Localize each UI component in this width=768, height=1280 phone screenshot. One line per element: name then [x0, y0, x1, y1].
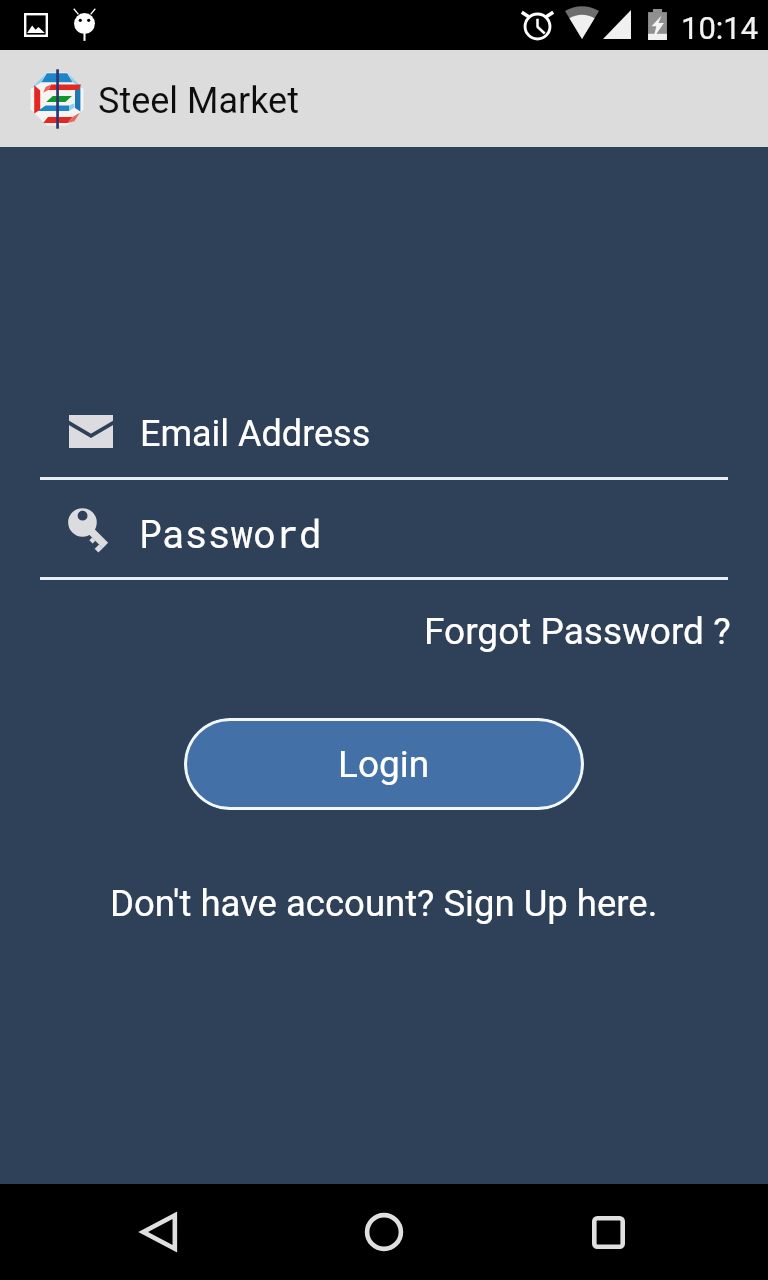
staticText: Email Address [140, 413, 371, 455]
button[interactable]: Forgot Password ? [416, 606, 739, 657]
button[interactable]: Home [336, 1184, 432, 1280]
staticText: Steel Market [98, 80, 299, 122]
staticText: Password [139, 508, 322, 558]
button[interactable]: Email Address [40, 398, 728, 464]
button[interactable]: Recent apps [560, 1184, 656, 1280]
staticText: 10:14 [681, 10, 759, 46]
button[interactable]: Back [111, 1184, 207, 1280]
button[interactable]: Don't have account? Sign Up here. [102, 878, 666, 929]
staticText: Forgot Password ? [424, 610, 731, 653]
button[interactable]: Steel Market [0, 50, 320, 147]
staticText: Don't have account? Sign Up here. [110, 882, 658, 925]
button[interactable]: Password [40, 498, 728, 564]
button[interactable]: Login [184, 718, 584, 810]
staticText: Login [338, 743, 430, 786]
